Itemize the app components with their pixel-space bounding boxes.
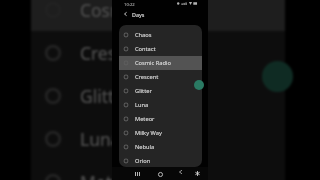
- staticText: Crescent: [135, 73, 159, 81]
- button[interactable]: Nebula: [119, 140, 202, 154]
- staticText: Glitter: [135, 87, 152, 95]
- staticText: Nebula: [135, 143, 155, 151]
- button: Crescent: [31, 31, 285, 74]
- staticText: Meteor: [135, 115, 155, 123]
- staticText: Milky Way: [135, 129, 162, 137]
- staticText: Cosmic Radio: [135, 59, 171, 67]
- staticText: Luna: [80, 127, 121, 151]
- button[interactable]: Luna: [119, 98, 202, 112]
- button[interactable]: Recent apps: [131, 168, 143, 180]
- staticText: Contact: [135, 45, 156, 53]
- button: Meteor: [31, 160, 285, 180]
- button[interactable]: Meteor: [119, 112, 202, 126]
- staticText: Crescent: [80, 41, 152, 65]
- button[interactable]: Navigate up: [119, 7, 132, 20]
- button[interactable]: Glitter: [119, 84, 202, 98]
- staticText: Chaos: [135, 31, 152, 39]
- button: Luna: [31, 117, 285, 160]
- staticText: Glitter: [80, 84, 132, 108]
- button[interactable]: Home: [154, 168, 166, 180]
- staticText: Orion: [135, 157, 151, 165]
- button[interactable]: Crescent: [119, 70, 202, 84]
- button: Add ringtone: [262, 61, 293, 92]
- button[interactable]: Contact: [119, 42, 202, 56]
- staticText: Days: [132, 11, 145, 18]
- button[interactable]: Change keyboard: [191, 167, 204, 180]
- staticText: 10:22: [124, 2, 135, 8]
- button[interactable]: Add ringtone: [194, 80, 204, 90]
- button: Cosmic Radio: [31, 0, 285, 31]
- button[interactable]: Back: [177, 168, 184, 175]
- button[interactable]: Chaos: [119, 28, 202, 42]
- button[interactable]: Milky Way: [119, 126, 202, 140]
- staticText: Meteor: [80, 170, 140, 180]
- staticText: Cosmic Radio: [80, 0, 191, 22]
- button: Glitter: [31, 74, 285, 117]
- button[interactable]: Orion: [119, 154, 202, 167]
- staticText: Luna: [135, 101, 149, 109]
- button[interactable]: Cosmic Radio: [119, 56, 202, 70]
